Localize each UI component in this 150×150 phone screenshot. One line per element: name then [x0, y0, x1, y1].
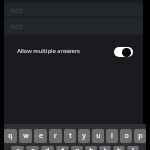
button[interactable]: t — [64, 129, 76, 143]
button[interactable]: q — [4, 129, 17, 143]
staticText: u — [96, 131, 101, 141]
button[interactable]: o — [120, 129, 132, 143]
staticText: y — [82, 131, 86, 141]
button[interactable]: Allow multiple answers — [4, 46, 143, 56]
button[interactable]: g — [71, 146, 83, 150]
staticText: s — [31, 146, 35, 150]
staticText: Allow multiple answers — [17, 47, 80, 55]
button[interactable]: d — [41, 146, 54, 150]
button[interactable]: a — [11, 146, 24, 150]
staticText: l — [132, 146, 134, 150]
button[interactable]: r — [49, 129, 62, 143]
staticText: Add — [10, 22, 23, 31]
button[interactable]: j — [99, 146, 111, 150]
button[interactable]: Allow multiple answers toggle — [114, 47, 133, 57]
staticText: f — [61, 146, 64, 150]
staticText: g — [75, 146, 80, 150]
staticText: r — [54, 131, 57, 141]
button[interactable]: i — [106, 129, 118, 143]
staticText: k — [117, 146, 121, 150]
staticText: p — [138, 131, 143, 141]
staticText: Add — [10, 6, 23, 15]
button[interactable]: e — [34, 129, 47, 143]
button[interactable]: y — [78, 129, 90, 143]
staticText: t — [69, 131, 72, 141]
staticText: d — [45, 146, 50, 150]
button[interactable]: k — [113, 146, 125, 150]
button[interactable]: p — [134, 129, 146, 143]
staticText: i — [111, 131, 113, 141]
staticText: q — [8, 131, 13, 141]
staticText: w — [23, 131, 29, 141]
button[interactable]: s — [26, 146, 39, 150]
staticText: e — [39, 131, 43, 141]
button[interactable]: w — [19, 129, 32, 143]
staticText: h — [89, 146, 94, 150]
button[interactable]: f — [56, 146, 69, 150]
staticText: o — [124, 131, 129, 141]
staticText: a — [16, 146, 20, 150]
button[interactable]: u — [92, 129, 104, 143]
button[interactable]: h — [85, 146, 97, 150]
staticText: j — [104, 146, 106, 150]
button[interactable]: l — [127, 146, 139, 150]
